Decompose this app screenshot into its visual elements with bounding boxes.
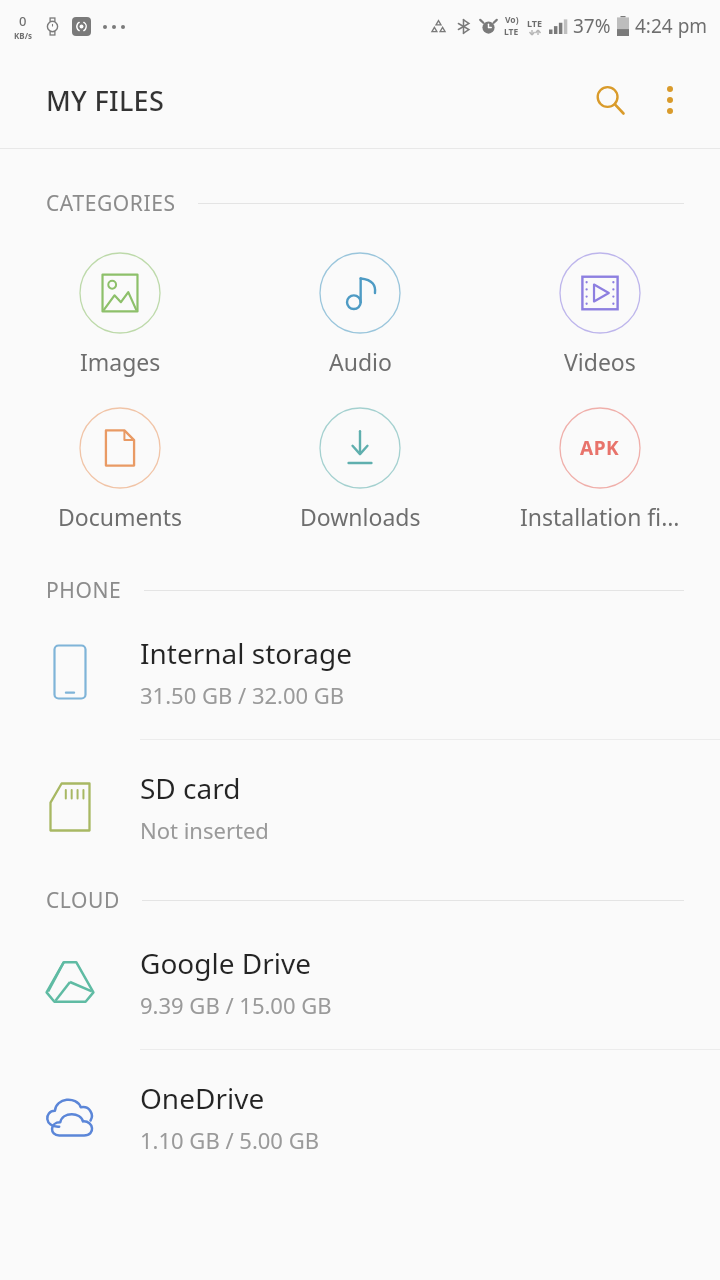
- button[interactable]: Downloads: [240, 403, 480, 536]
- button[interactable]: Images: [0, 248, 240, 381]
- button[interactable]: Internal storage: [0, 605, 720, 740]
- staticText: CLOUD: [46, 886, 120, 915]
- staticText: CATEGORIES: [46, 189, 176, 218]
- staticText: 4:24 pm: [635, 13, 708, 39]
- staticText: KB/s: [14, 30, 32, 41]
- button[interactable]: Documents: [0, 403, 240, 536]
- button[interactable]: Videos: [480, 248, 720, 381]
- staticText: Images: [80, 346, 161, 377]
- staticText: Downloads: [300, 501, 421, 532]
- staticText: 9.39 GB / 15.00 GB: [140, 990, 332, 1020]
- staticText: PHONE: [46, 576, 122, 605]
- staticText: Videos: [564, 346, 636, 377]
- staticText: Documents: [58, 501, 182, 532]
- staticText: 0: [19, 12, 27, 30]
- button[interactable]: Google Drive: [0, 915, 720, 1050]
- staticText: 37%: [573, 13, 611, 39]
- button[interactable]: Audio: [240, 248, 480, 381]
- button[interactable]: SD card: [0, 740, 720, 874]
- button[interactable]: Search: [582, 72, 638, 128]
- staticText: Vo): [505, 14, 519, 26]
- staticText: SD card: [140, 769, 241, 807]
- staticText: LTE: [504, 26, 519, 38]
- staticText: MY FILES: [46, 82, 165, 119]
- staticText: Internal storage: [140, 634, 352, 672]
- staticText: 1.10 GB / 5.00 GB: [140, 1125, 319, 1155]
- staticText: 31.50 GB / 32.00 GB: [140, 680, 345, 710]
- button[interactable]: APK: [480, 403, 720, 536]
- staticText: Google Drive: [140, 944, 312, 982]
- staticText: Audio: [329, 346, 392, 377]
- staticText: OneDrive: [140, 1079, 265, 1117]
- button[interactable]: More options: [644, 74, 696, 126]
- button[interactable]: OneDrive: [0, 1050, 720, 1184]
- staticText: Not inserted: [140, 815, 269, 845]
- staticText: Installation fi…: [520, 501, 680, 532]
- staticText: LTE: [527, 17, 543, 29]
- staticText: APK: [580, 435, 620, 461]
